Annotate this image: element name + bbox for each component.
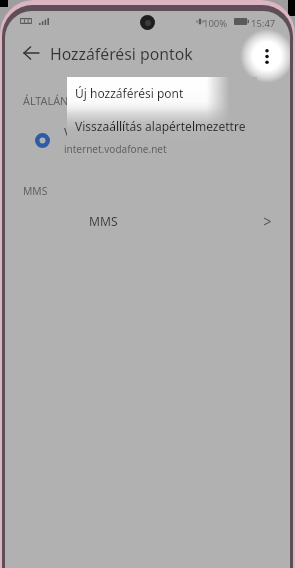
button[interactable]: MMS: [5, 204, 290, 238]
staticText: Visszaállítás alapértelmezettre: [75, 118, 246, 134]
staticText: 15:47: [251, 17, 276, 30]
button[interactable]: Visszaállítás alapértelmezettre: [67, 110, 257, 142]
button[interactable]: Back: [17, 39, 45, 67]
button[interactable]: Vodafone Internet: [5, 119, 290, 161]
staticText: Vodafone Internet: [64, 124, 168, 140]
staticText: ÁLTALÁNOS: [23, 93, 83, 108]
staticText: Hozzáférési pontok: [50, 43, 193, 65]
button[interactable]: More options: [241, 30, 290, 82]
staticText: internet.vodafone.net: [64, 142, 167, 156]
staticText: MMS: [89, 213, 118, 229]
staticText: MMS: [23, 184, 48, 198]
staticText: Új hozzáférési pont: [75, 85, 184, 101]
button[interactable]: Új hozzáférési pont: [67, 77, 257, 109]
staticText: 100%: [203, 17, 228, 30]
